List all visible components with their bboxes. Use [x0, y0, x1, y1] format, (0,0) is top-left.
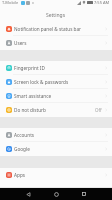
staticText: Apps — [14, 172, 104, 178]
staticText: 7:55 AM — [94, 0, 110, 5]
button[interactable]: Smart assistance — [0, 89, 112, 103]
staticText: Do not disturb — [14, 107, 95, 113]
button[interactable]: Accounts — [0, 128, 112, 142]
button[interactable]: Notification panel & status bar — [0, 22, 112, 36]
button[interactable]: Back — [14, 188, 42, 200]
staticText: Google — [14, 146, 104, 152]
staticText: T-Mobile — [2, 0, 19, 5]
staticText: Notification panel & status bar — [14, 26, 104, 32]
staticText: Users — [14, 40, 104, 46]
staticText: Off — [95, 107, 102, 113]
button[interactable]: Do not disturb — [0, 103, 112, 117]
button[interactable]: Apps — [0, 168, 112, 182]
staticText: Settings — [46, 12, 66, 19]
button[interactable]: Fingerprint ID — [0, 61, 112, 75]
button[interactable]: Users — [0, 36, 112, 50]
button[interactable]: Screen lock & passwords — [0, 75, 112, 89]
staticText: x — [32, 0, 34, 5]
button[interactable]: Recent apps — [70, 188, 98, 200]
button[interactable]: Google — [0, 142, 112, 156]
staticText: Accounts — [14, 132, 104, 138]
staticText: Screen lock & passwords — [14, 79, 104, 85]
staticText: Fingerprint ID — [14, 65, 104, 71]
button[interactable]: Home — [42, 188, 70, 200]
staticText: Smart assistance — [14, 93, 104, 99]
